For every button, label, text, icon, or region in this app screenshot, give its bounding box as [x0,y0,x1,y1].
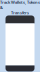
staticText: Transfers [11,10,29,15]
staticText: Track Wallets, Tokens & [0,0,40,10]
